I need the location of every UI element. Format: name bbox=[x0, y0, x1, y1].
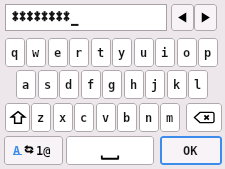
staticText: z bbox=[37, 111, 45, 125]
button[interactable]: d bbox=[59, 70, 79, 99]
button[interactable]: p bbox=[198, 38, 218, 67]
button[interactable]: a bbox=[16, 70, 36, 99]
button[interactable]: Move cursor left bbox=[171, 4, 194, 31]
button[interactable]: Backspace bbox=[186, 103, 222, 132]
button[interactable]: x bbox=[53, 103, 73, 132]
staticText: a bbox=[22, 78, 30, 92]
button[interactable]: z bbox=[31, 103, 51, 132]
staticText: w bbox=[32, 46, 40, 60]
button[interactable]: m bbox=[160, 103, 180, 132]
staticText: y bbox=[118, 46, 126, 60]
button[interactable]: Space bbox=[66, 136, 154, 165]
button[interactable]: s bbox=[38, 70, 58, 99]
staticText: d bbox=[65, 78, 73, 92]
staticText: i bbox=[161, 46, 169, 60]
staticText: f bbox=[87, 78, 95, 92]
button[interactable]: Shift bbox=[5, 103, 30, 132]
staticText: p bbox=[204, 46, 212, 60]
staticText: n bbox=[145, 111, 153, 125]
staticText: OK bbox=[183, 144, 198, 158]
button[interactable]: q bbox=[5, 38, 25, 67]
staticText: 1@ bbox=[36, 144, 51, 158]
button[interactable]: h bbox=[124, 70, 144, 99]
button[interactable]: Switch input mode bbox=[4, 136, 63, 165]
button[interactable]: e bbox=[48, 38, 68, 67]
button[interactable]: b bbox=[117, 103, 137, 132]
button[interactable]: t bbox=[91, 38, 111, 67]
button[interactable]: g bbox=[102, 70, 122, 99]
staticText: h bbox=[130, 78, 138, 92]
staticText: b bbox=[123, 111, 131, 125]
staticText: g bbox=[108, 78, 116, 92]
staticText: e bbox=[54, 46, 62, 60]
button[interactable]: Password entry field bbox=[5, 4, 167, 31]
staticText: m bbox=[166, 111, 174, 125]
staticText: c bbox=[80, 111, 88, 125]
button[interactable]: y bbox=[112, 38, 132, 67]
button[interactable]: r bbox=[69, 38, 89, 67]
button[interactable]: k bbox=[167, 70, 187, 99]
staticText: v bbox=[102, 111, 110, 125]
button[interactable]: j bbox=[145, 70, 165, 99]
button[interactable]: Move cursor right bbox=[194, 4, 217, 31]
button[interactable]: u bbox=[134, 38, 154, 67]
button[interactable]: v bbox=[96, 103, 116, 132]
staticText: j bbox=[151, 78, 159, 92]
button[interactable]: OK bbox=[160, 136, 222, 165]
staticText: A bbox=[13, 144, 21, 158]
staticText: t bbox=[97, 46, 105, 60]
button[interactable]: o bbox=[177, 38, 197, 67]
staticText: x bbox=[59, 111, 67, 125]
staticText: o bbox=[183, 46, 191, 60]
button[interactable]: w bbox=[26, 38, 46, 67]
staticText: k bbox=[173, 78, 181, 92]
staticText: l bbox=[194, 78, 202, 92]
button[interactable]: i bbox=[155, 38, 175, 67]
staticText: u bbox=[140, 46, 148, 60]
staticText: r bbox=[75, 46, 83, 60]
button[interactable]: f bbox=[81, 70, 101, 99]
staticText: q bbox=[11, 46, 19, 60]
button[interactable]: n bbox=[139, 103, 159, 132]
button[interactable]: l bbox=[188, 70, 208, 99]
staticText: s bbox=[44, 78, 52, 92]
button[interactable]: c bbox=[74, 103, 94, 132]
